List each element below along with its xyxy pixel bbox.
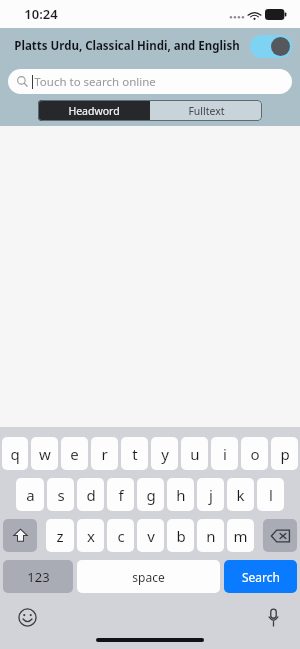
button[interactable]: Shift <box>3 519 37 552</box>
staticText: i <box>223 444 227 464</box>
staticText: Search <box>242 569 280 585</box>
staticText: j <box>209 485 213 505</box>
staticText: n <box>206 526 216 546</box>
button[interactable]: a <box>16 478 44 511</box>
button[interactable]: l <box>257 478 284 511</box>
button[interactable]: Toggle online search <box>250 35 292 58</box>
button[interactable]: k <box>227 478 254 511</box>
button[interactable]: space <box>77 560 220 593</box>
button[interactable]: w <box>31 437 58 470</box>
staticText: v <box>147 526 155 546</box>
button[interactable]: Backspace <box>263 519 297 552</box>
button[interactable]: e <box>61 437 88 470</box>
button[interactable]: u <box>181 437 208 470</box>
staticText: t <box>132 444 138 464</box>
button[interactable]: z <box>46 519 74 552</box>
staticText: h <box>176 485 186 505</box>
staticText: Headword <box>68 104 120 118</box>
button[interactable]: d <box>77 478 104 511</box>
staticText: 10:24 <box>24 5 58 23</box>
button[interactable]: h <box>167 478 194 511</box>
button[interactable]: p <box>271 437 298 470</box>
button[interactable]: o <box>241 437 268 470</box>
staticText: c <box>117 526 125 546</box>
staticText: Platts Urdu, Classical Hindi, and Englis… <box>14 38 240 54</box>
button[interactable]: v <box>137 519 164 552</box>
staticText: k <box>236 485 245 505</box>
staticText: g <box>146 485 156 505</box>
staticText: p <box>280 444 290 464</box>
button[interactable]: b <box>167 519 194 552</box>
button[interactable]: 123 <box>3 560 73 593</box>
staticText: o <box>250 444 260 464</box>
button[interactable]: Fulltext <box>150 100 262 121</box>
staticText: space <box>132 569 165 585</box>
staticText: u <box>190 444 200 464</box>
button[interactable]: Emoji keyboard <box>16 606 38 628</box>
button[interactable]: Dictation <box>262 606 284 628</box>
staticText: q <box>10 444 20 464</box>
button[interactable]: g <box>137 478 164 511</box>
staticText: z <box>56 526 64 546</box>
staticText: y <box>161 444 169 464</box>
button[interactable]: x <box>77 519 104 552</box>
button[interactable]: t <box>121 437 148 470</box>
staticText: e <box>70 444 79 464</box>
staticText: Fulltext <box>188 104 225 118</box>
staticText: d <box>86 485 96 505</box>
button[interactable]: c <box>107 519 134 552</box>
button[interactable]: m <box>227 519 254 552</box>
staticText: a <box>26 485 35 505</box>
button[interactable]: n <box>197 519 224 552</box>
staticText: x <box>87 526 95 546</box>
staticText: 123 <box>27 568 50 586</box>
staticText: f <box>118 485 124 505</box>
staticText: b <box>176 526 186 546</box>
staticText: l <box>269 485 273 505</box>
button[interactable]: i <box>211 437 238 470</box>
button[interactable]: j <box>197 478 224 511</box>
staticText: m <box>233 526 248 546</box>
button[interactable]: Search <box>224 560 297 593</box>
button[interactable]: q <box>2 437 28 470</box>
button[interactable]: Headword <box>38 100 150 121</box>
button[interactable]: f <box>107 478 134 511</box>
button[interactable]: s <box>47 478 74 511</box>
staticText: s <box>57 485 65 505</box>
staticText: Touch to search online <box>34 74 156 90</box>
button[interactable]: y <box>151 437 178 470</box>
staticText: r <box>101 444 108 464</box>
staticText: w <box>39 444 51 464</box>
button[interactable]: Touch to search online <box>8 69 292 94</box>
button[interactable]: r <box>91 437 118 470</box>
